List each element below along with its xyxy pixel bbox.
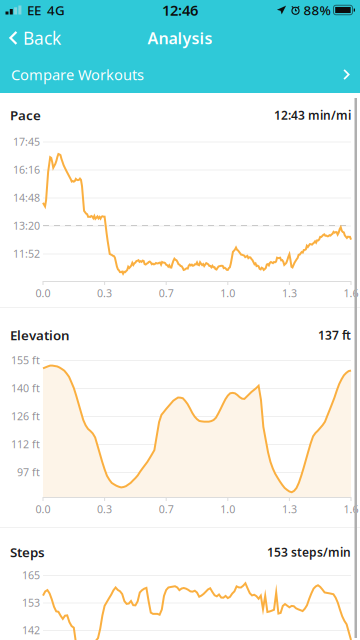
staticText: 88% [303, 1, 330, 19]
staticText: 1.3 [282, 502, 297, 516]
staticText: 140 ft [11, 381, 40, 395]
staticText: 12:43 min/mi [274, 107, 351, 123]
staticText: 4G [47, 1, 65, 19]
staticText: 11:52 [13, 246, 40, 261]
staticText: 14:48 [13, 190, 40, 205]
staticText: 153 steps/min [267, 544, 351, 560]
staticText: 112 ft [11, 437, 40, 451]
staticText: Compare Workouts [11, 65, 144, 84]
staticText: 1.3 [282, 286, 297, 300]
staticText: 12:46 [162, 0, 198, 20]
staticText: 97 ft [17, 465, 40, 479]
staticText: 0.3 [97, 502, 112, 516]
button[interactable]: Back [0, 20, 71, 56]
staticText: 1.0 [220, 502, 235, 516]
staticText: 155 ft [11, 353, 40, 367]
staticText: 0.0 [35, 286, 50, 300]
staticText: 0.3 [97, 286, 112, 300]
staticText: 137 ft [318, 327, 351, 343]
staticText: 165 [22, 568, 40, 582]
staticText: EE [27, 1, 41, 19]
staticText: 153 [22, 595, 40, 610]
button[interactable]: Compare Workouts [0, 56, 360, 93]
staticText: 0.7 [159, 286, 174, 300]
staticText: 17:45 [13, 134, 40, 149]
staticText: 16:16 [13, 162, 40, 177]
staticText: 1.0 [220, 286, 235, 300]
staticText: Back [23, 26, 61, 49]
staticText: 126 ft [11, 409, 40, 423]
staticText: 1.6 [343, 502, 358, 516]
staticText: Analysis [147, 27, 212, 49]
staticText: 142 [22, 623, 40, 637]
staticText: Steps [10, 543, 45, 561]
staticText: Pace [10, 106, 41, 124]
staticText: 13:20 [13, 218, 40, 233]
staticText: 1.6 [343, 286, 358, 300]
staticText: Elevation [10, 326, 70, 344]
staticText: 0.0 [35, 502, 50, 516]
staticText: 0.7 [159, 502, 174, 516]
